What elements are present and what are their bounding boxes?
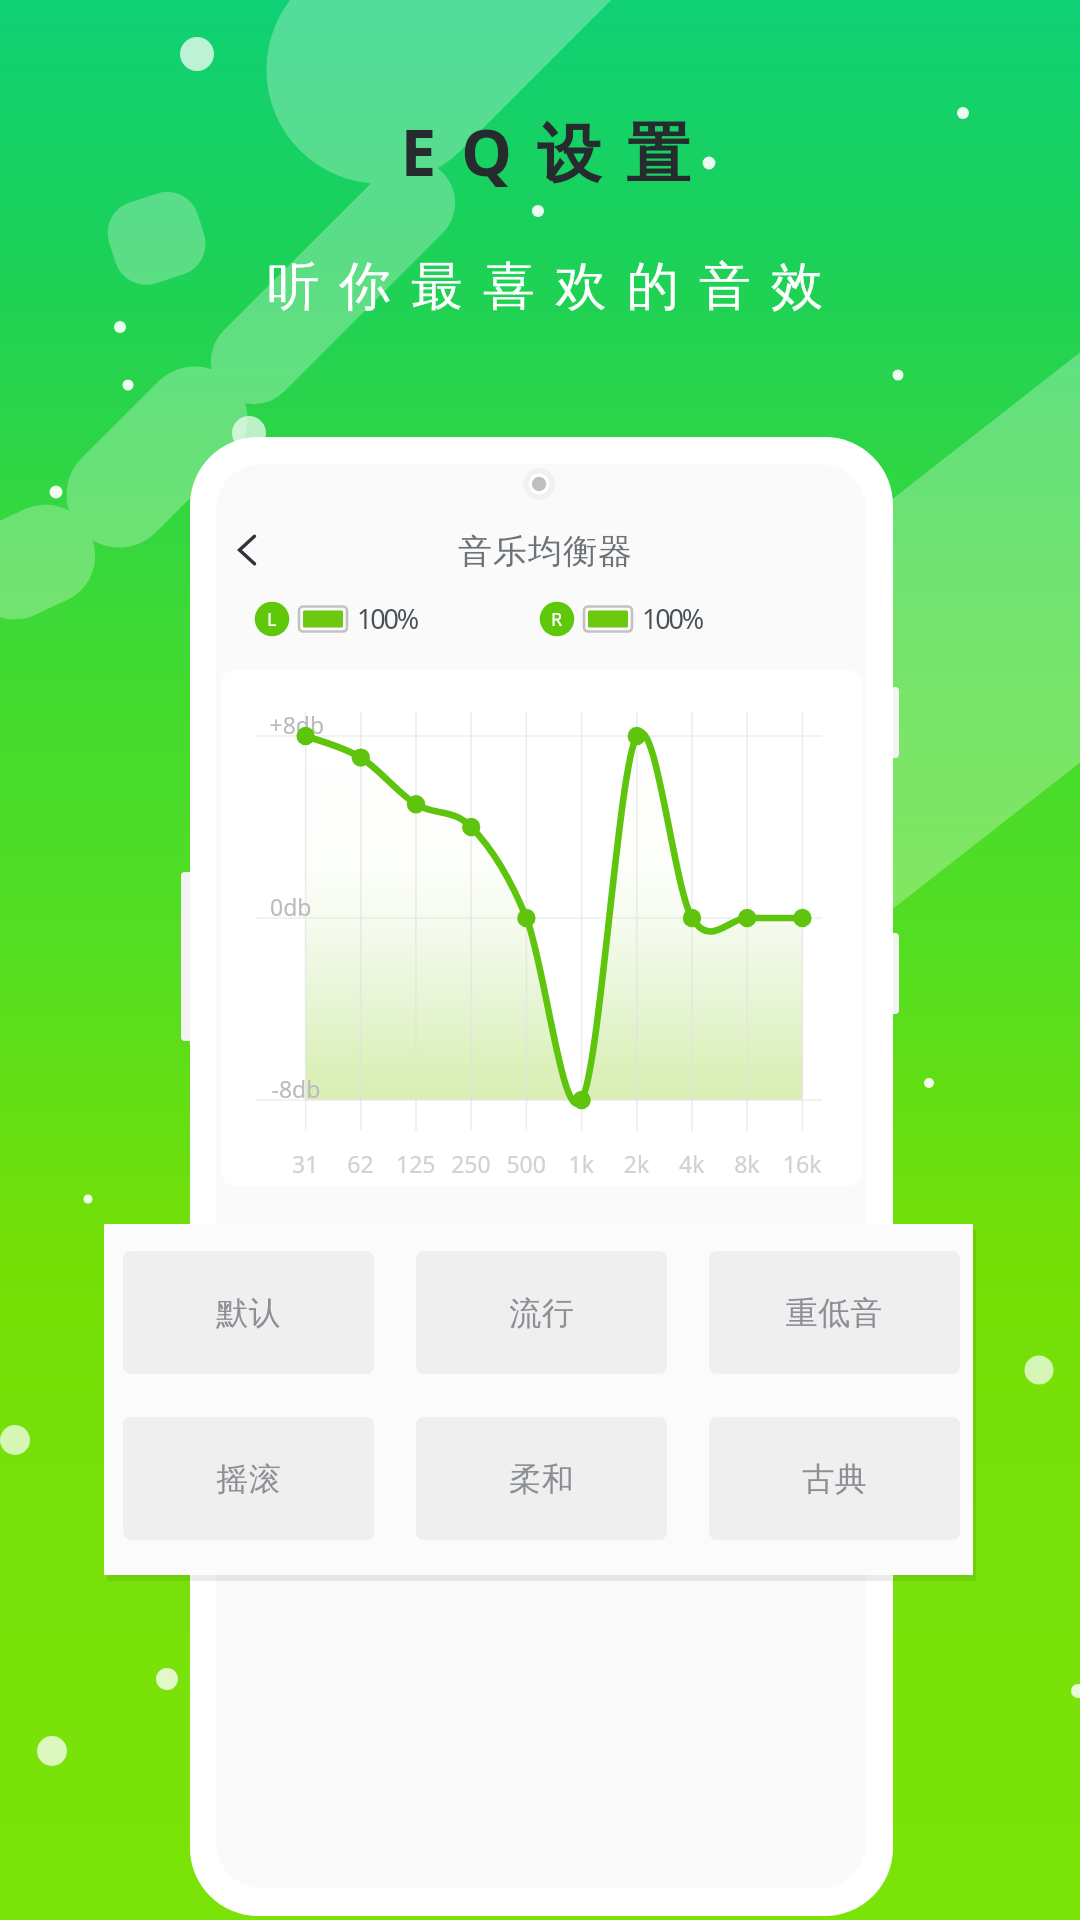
button[interactable]: 古典 <box>709 1417 960 1540</box>
button[interactable]: 摇滚 <box>123 1417 374 1540</box>
button[interactable]: Equalizer curve <box>221 670 862 1186</box>
button[interactable]: 柔和 <box>416 1417 667 1540</box>
button[interactable]: 默认 <box>123 1251 374 1374</box>
button[interactable]: Back <box>216 508 300 592</box>
button[interactable]: Left earbud battery 100% <box>248 592 423 646</box>
button[interactable]: Right earbud battery 100% <box>533 592 708 646</box>
button[interactable]: 重低音 <box>709 1251 960 1374</box>
button[interactable]: 流行 <box>416 1251 667 1374</box>
